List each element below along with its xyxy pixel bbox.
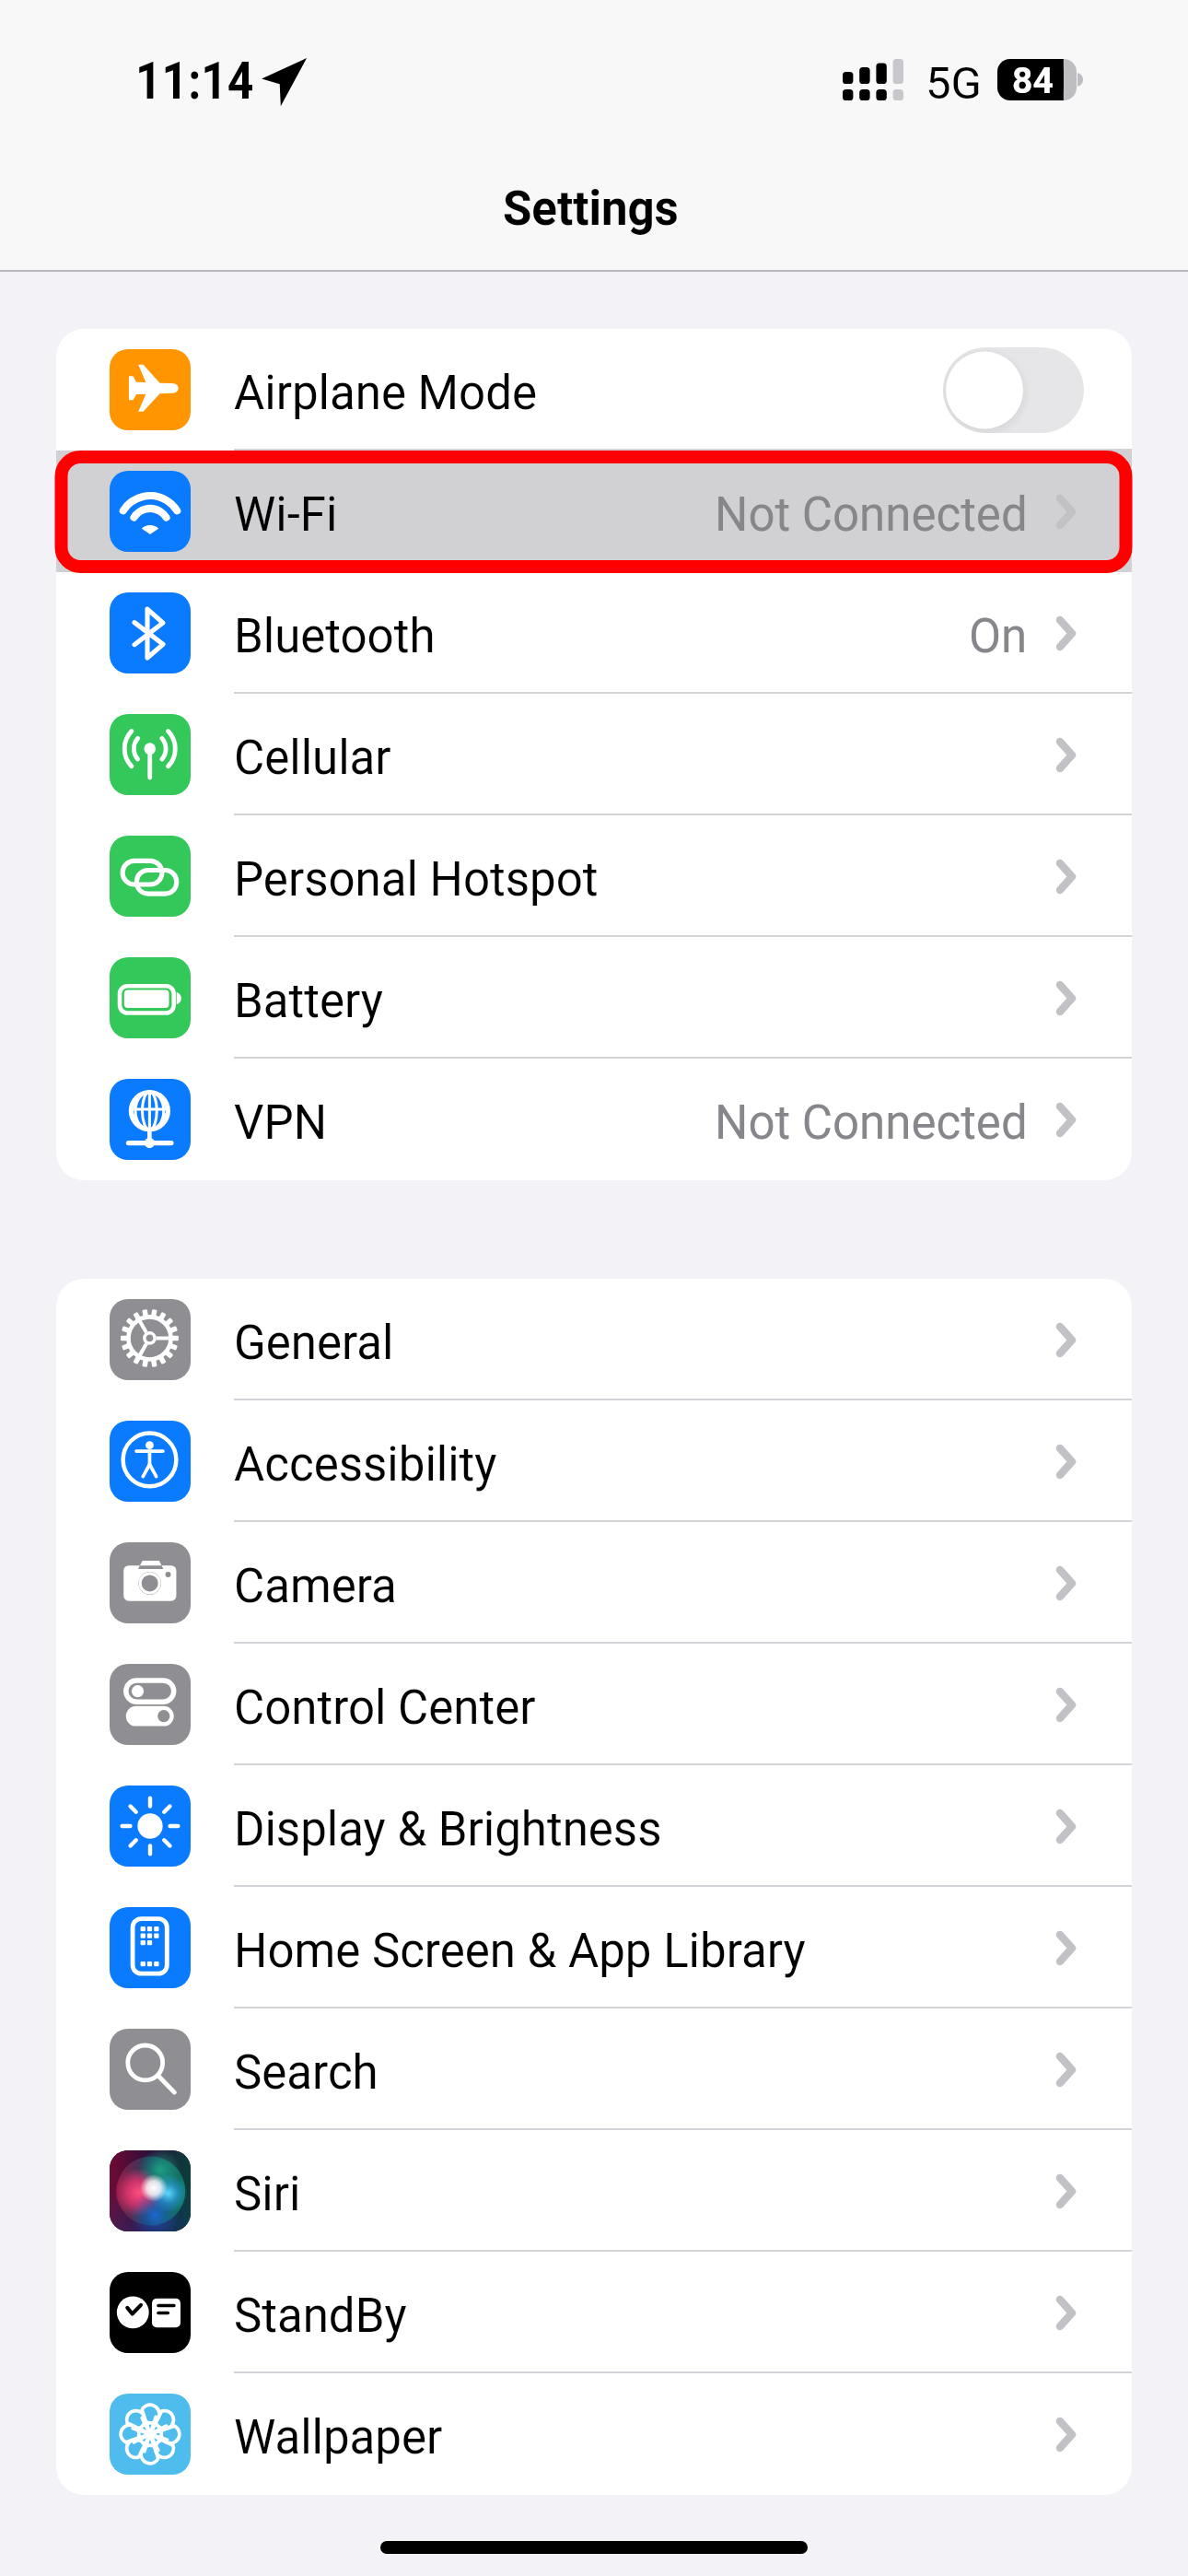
staticText: Not Connected bbox=[715, 1095, 1028, 1151]
staticText: Siri bbox=[234, 2167, 301, 2222]
button[interactable]: Home Screen & App Library bbox=[56, 1887, 1132, 2008]
staticText: General bbox=[234, 1316, 394, 1371]
button[interactable]: Control Center bbox=[56, 1644, 1132, 1765]
staticText: Bluetooth bbox=[234, 609, 436, 664]
button[interactable]: Accessibility bbox=[56, 1400, 1132, 1522]
button[interactable]: Airplane Mode bbox=[56, 329, 1132, 451]
staticText: Control Center bbox=[234, 1680, 536, 1736]
button[interactable]: StandBy bbox=[56, 2252, 1132, 2373]
staticText: Home Screen & App Library bbox=[234, 1924, 806, 1979]
button[interactable]: Battery bbox=[56, 937, 1132, 1059]
staticText: 11:14 bbox=[135, 51, 254, 111]
staticText: Camera bbox=[234, 1559, 397, 1614]
button[interactable]: Camera bbox=[56, 1522, 1132, 1644]
staticText: On bbox=[969, 609, 1028, 664]
staticText: Personal Hotspot bbox=[234, 852, 599, 907]
button[interactable]: Airplane Mode toggle bbox=[943, 347, 1084, 433]
staticText: Cellular bbox=[234, 731, 391, 786]
button[interactable]: Siri bbox=[56, 2130, 1132, 2252]
staticText: Wallpaper bbox=[234, 2410, 443, 2465]
staticText: Battery bbox=[234, 974, 383, 1029]
staticText: Not Connected bbox=[715, 487, 1028, 543]
button[interactable]: VPN bbox=[56, 1059, 1132, 1180]
staticText: Accessibility bbox=[234, 1437, 497, 1493]
staticText: Search bbox=[234, 2045, 379, 2101]
staticText: Wi-Fi bbox=[234, 487, 338, 543]
button[interactable]: Search bbox=[56, 2008, 1132, 2130]
button[interactable]: Personal Hotspot bbox=[56, 815, 1132, 937]
button[interactable]: Cellular bbox=[56, 694, 1132, 815]
button[interactable]: Wallpaper bbox=[56, 2373, 1132, 2495]
button[interactable]: Bluetooth bbox=[56, 572, 1132, 694]
staticText: Airplane Mode bbox=[234, 366, 538, 421]
button[interactable]: General bbox=[56, 1279, 1132, 1400]
staticText: Display & Brightness bbox=[234, 1802, 662, 1857]
staticText: Settings bbox=[503, 181, 679, 237]
button[interactable]: Wi-Fi bbox=[56, 451, 1132, 572]
button[interactable]: Display & Brightness bbox=[56, 1765, 1132, 1887]
staticText: VPN bbox=[234, 1095, 328, 1151]
staticText: 5G bbox=[926, 57, 982, 110]
staticText: 84 bbox=[1012, 60, 1054, 102]
staticText: StandBy bbox=[234, 2289, 407, 2344]
